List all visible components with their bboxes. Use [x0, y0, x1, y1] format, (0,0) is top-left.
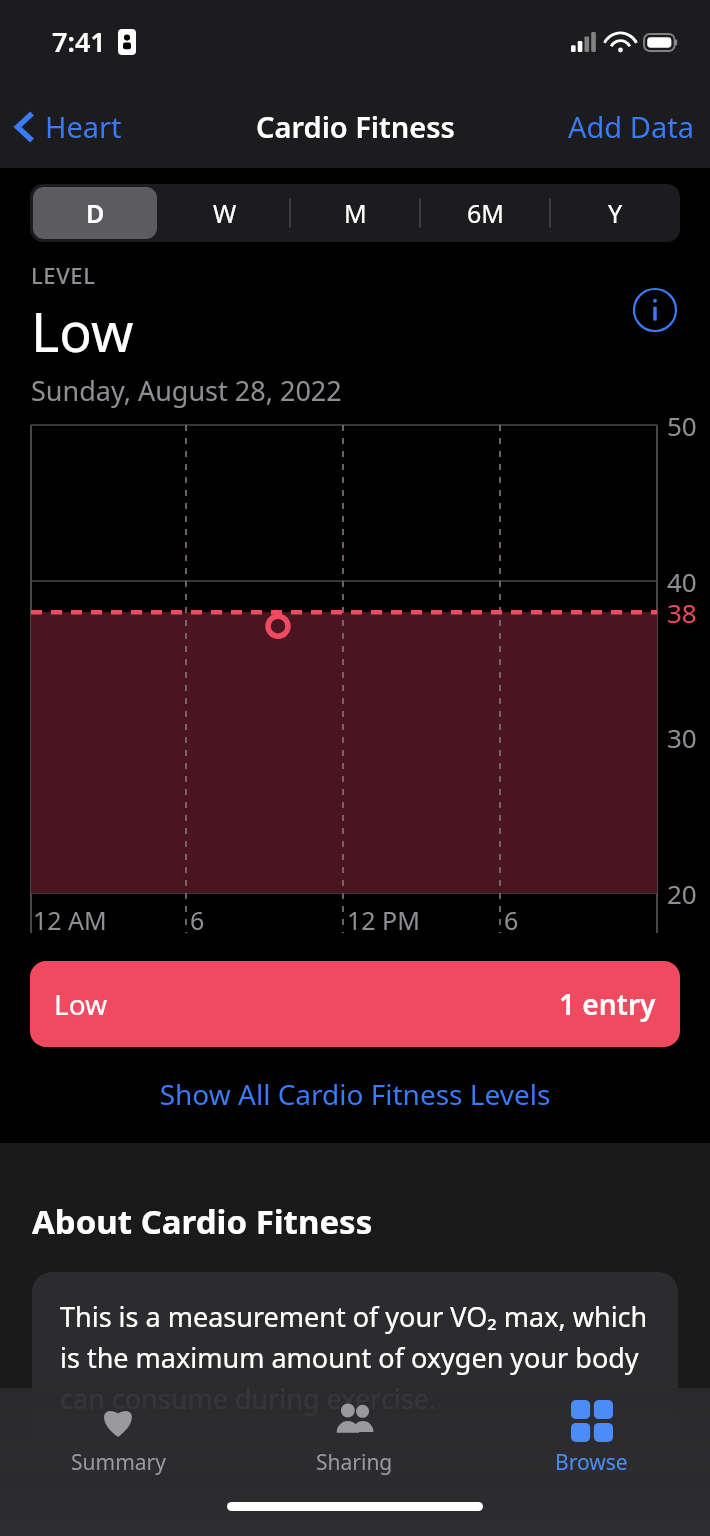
button[interactable]: Sharing	[236, 1388, 473, 1488]
staticText: 6M	[467, 196, 504, 230]
button[interactable]: M	[293, 187, 417, 239]
button[interactable]: This is a measurement of your VO₂ max, w…	[32, 1272, 678, 1472]
staticText: 6	[504, 903, 519, 937]
button[interactable]: Summary	[0, 1388, 236, 1488]
button[interactable]: D	[33, 187, 157, 239]
staticText: About Cardio Fitness	[32, 1199, 373, 1244]
staticText: This is a measurement of your VO₂ max, w…	[60, 1298, 656, 1417]
staticText: Summary	[71, 1448, 166, 1477]
staticText: Cardio Fitness	[256, 107, 455, 146]
staticText: M	[344, 196, 367, 230]
staticText: 6	[190, 903, 205, 937]
staticText: Y	[608, 196, 623, 230]
button[interactable]: 6M	[423, 187, 547, 239]
staticText: 50	[667, 408, 697, 443]
staticText: 38	[667, 595, 697, 630]
staticText: Sharing	[316, 1448, 393, 1477]
staticText: 7:41	[52, 23, 106, 60]
staticText: Sunday, August 28, 2022	[31, 372, 342, 409]
staticText: W	[213, 196, 237, 230]
staticText: 40	[667, 564, 697, 599]
button[interactable]: Y	[553, 187, 677, 239]
staticText: 30	[667, 720, 697, 755]
button[interactable]: Information about cardio fitness	[631, 286, 679, 334]
staticText: 12 PM	[347, 903, 420, 937]
button[interactable]: Low	[30, 961, 680, 1047]
staticText: D	[86, 196, 105, 230]
button[interactable]: Add Data	[552, 97, 710, 156]
button[interactable]: Heart	[0, 99, 134, 154]
button[interactable]: Browse	[473, 1388, 710, 1488]
button[interactable]: Show All Cardio Fitness Levels	[0, 1069, 710, 1119]
staticText: Heart	[45, 107, 122, 146]
staticText: 20	[667, 876, 697, 911]
button[interactable]: W	[163, 187, 287, 239]
staticText: Low	[31, 294, 134, 368]
staticText: Low	[54, 985, 108, 1023]
staticText: Browse	[555, 1448, 628, 1477]
staticText: 1 entry	[559, 985, 656, 1023]
staticText: 12 AM	[33, 903, 107, 937]
staticText: LEVEL	[31, 260, 96, 290]
